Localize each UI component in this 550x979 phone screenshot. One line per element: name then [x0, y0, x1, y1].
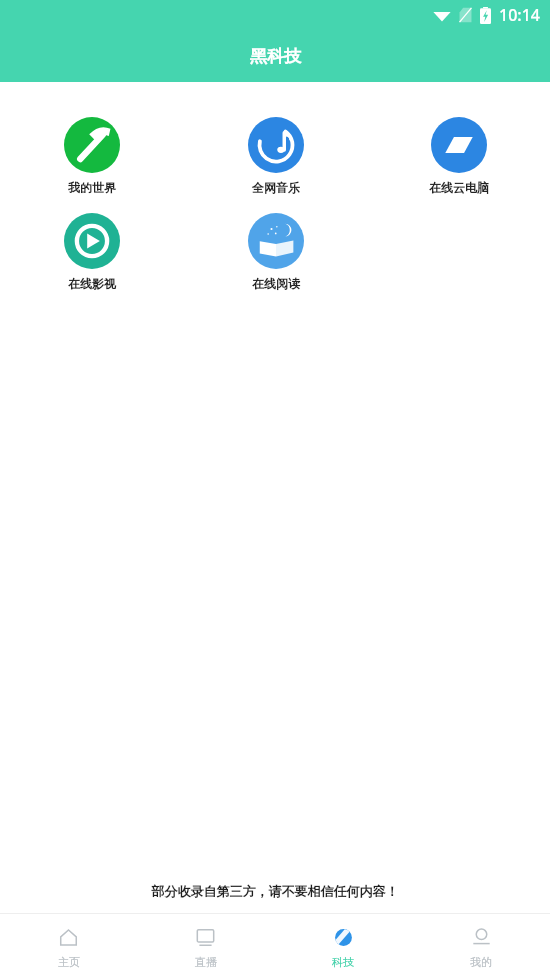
staticText: 黑科技 [250, 46, 301, 67]
staticText: 主页 [58, 955, 80, 969]
staticText: 部分收录自第三方，请不要相信任何内容！ [0, 883, 550, 899]
staticText: 全网音乐 [252, 180, 300, 195]
staticText: 直播 [195, 955, 217, 969]
staticText: 在线影视 [68, 276, 116, 291]
button[interactable]: 在线影视 [64, 213, 120, 291]
staticText: 在线阅读 [252, 276, 300, 291]
staticText: 10:14 [499, 4, 540, 26]
staticText: 科技 [332, 955, 354, 969]
staticText: 我的世界 [68, 180, 116, 195]
button[interactable]: 在线云电脑 [429, 117, 489, 195]
button[interactable]: 直播 [137, 918, 274, 976]
button[interactable]: 我的 [412, 918, 550, 976]
button[interactable]: 全网音乐 [248, 117, 304, 195]
button[interactable]: 我的世界 [64, 117, 120, 195]
button[interactable]: 科技 [274, 918, 412, 976]
staticText: 在线云电脑 [429, 180, 489, 195]
staticText: 我的 [470, 955, 492, 969]
button[interactable]: 主页 [0, 918, 137, 976]
button[interactable]: 在线阅读 [248, 213, 304, 291]
